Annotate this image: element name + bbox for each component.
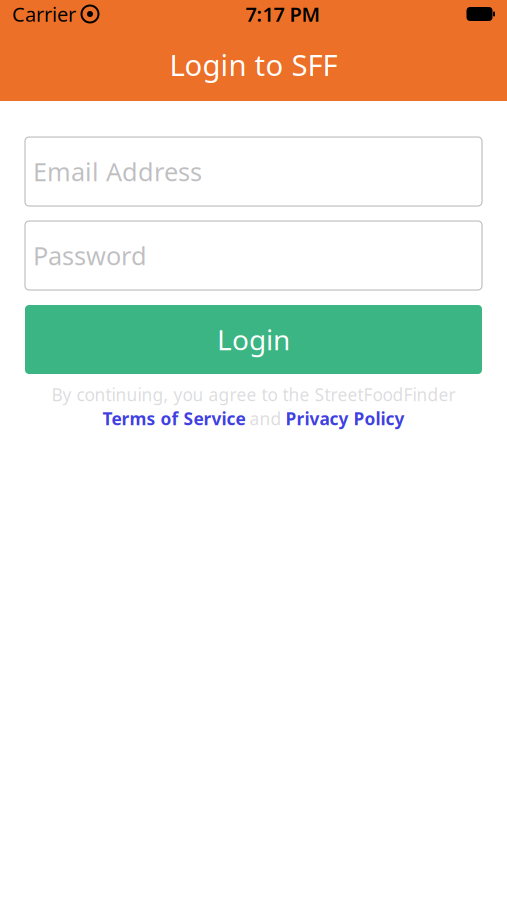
button[interactable]: Email Address [25,137,482,206]
staticText [76,1,81,27]
staticText: Privacy Policy [285,407,404,430]
staticText: 7:17 PM [245,1,320,27]
staticText: Carrier [12,1,76,27]
staticText: Password [33,239,147,272]
staticText: Terms of Service [102,407,245,430]
staticText: and [249,407,281,430]
staticText: By continuing, you agree to the StreetFo… [51,383,455,406]
button[interactable]: Login [25,305,482,374]
staticText: Login [217,321,290,358]
staticText: Login to SFF [169,45,337,84]
button[interactable]: Terms of Service [102,407,245,430]
staticText: Email Address [33,155,202,188]
button[interactable]: Password [25,221,482,290]
button[interactable]: Privacy Policy [285,407,404,430]
